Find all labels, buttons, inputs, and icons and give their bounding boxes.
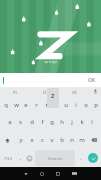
staticText: z <box>51 91 55 101</box>
staticText: h <box>60 118 64 126</box>
button[interactable]: Voice input <box>89 87 101 96</box>
staticText: l <box>91 118 93 126</box>
staticText: k <box>80 118 84 126</box>
staticText: w <box>14 101 19 109</box>
staticText: u <box>64 101 68 109</box>
staticText: y <box>54 101 58 109</box>
button[interactable]: , <box>16 149 25 167</box>
staticText: j <box>71 118 73 126</box>
button[interactable]: Hide keyboard <box>66 167 82 180</box>
button[interactable]: c <box>37 132 47 148</box>
button[interactable]: n <box>67 132 77 148</box>
staticText: s <box>19 118 22 126</box>
staticText: ?123 <box>4 156 12 161</box>
staticText: i <box>75 101 77 109</box>
staticText: r <box>35 101 38 109</box>
button[interactable]: f <box>37 114 47 130</box>
button[interactable]: ?123 <box>0 149 16 167</box>
staticText: Deutsch <box>48 156 63 161</box>
button[interactable]: Deutsch <box>35 150 75 166</box>
staticText: d <box>43 89 46 95</box>
button[interactable]: Shift <box>0 131 15 149</box>
staticText: ist <box>72 89 77 95</box>
staticText: c <box>41 136 44 144</box>
button[interactable]: ist <box>59 87 89 96</box>
button[interactable]: l <box>87 114 97 130</box>
button[interactable]: g <box>47 114 57 130</box>
button[interactable]: y <box>15 132 26 148</box>
staticText: , <box>20 155 22 162</box>
button[interactable]: u <box>61 97 71 112</box>
staticText: t <box>45 101 48 109</box>
button[interactable]: b <box>57 132 67 148</box>
staticText: x <box>30 136 34 144</box>
button[interactable]: OK <box>86 76 98 85</box>
button[interactable]: a <box>4 114 15 130</box>
button[interactable]: e <box>21 97 31 112</box>
staticText: f <box>41 118 44 126</box>
button[interactable]: m <box>77 132 87 148</box>
staticText: . <box>80 155 82 162</box>
button[interactable]: Emoji <box>25 149 34 167</box>
button[interactable]: d <box>29 87 59 96</box>
staticText: m <box>79 136 85 144</box>
staticText: g <box>50 118 54 126</box>
button[interactable]: Recents <box>50 167 66 180</box>
staticText: OK <box>88 77 96 84</box>
button[interactable]: r <box>31 97 41 112</box>
button[interactable]: p <box>91 97 101 112</box>
button[interactable]: k <box>77 114 87 130</box>
button[interactable]: Backspace <box>87 131 101 149</box>
button[interactable]: q <box>0 97 11 112</box>
staticText: v <box>50 136 54 144</box>
button[interactable]: . <box>76 149 85 167</box>
button[interactable]: i <box>71 97 81 112</box>
button[interactable]: Back <box>18 167 34 180</box>
button[interactable]: d <box>26 114 37 130</box>
staticText: tap to type <box>44 60 58 64</box>
button[interactable]: in <box>0 87 29 96</box>
button[interactable]: j <box>67 114 77 130</box>
button[interactable]: o <box>81 97 91 112</box>
staticText: p <box>94 101 98 109</box>
button[interactable]: s <box>15 114 26 130</box>
button[interactable]: Home <box>34 167 50 180</box>
staticText: e <box>24 101 28 109</box>
button[interactable]: w <box>11 97 21 112</box>
staticText: b <box>60 136 64 144</box>
staticText: q <box>4 101 8 109</box>
staticText: in <box>13 89 17 95</box>
staticText: a <box>8 118 12 126</box>
staticText: n <box>70 136 74 144</box>
staticText: o <box>84 101 88 109</box>
staticText: y <box>19 136 23 144</box>
button[interactable]: h <box>57 114 67 130</box>
button[interactable]: x <box>26 132 37 148</box>
button[interactable]: y <box>51 97 61 112</box>
staticText: d <box>30 118 34 126</box>
button[interactable]: v <box>47 132 57 148</box>
button[interactable]: Enter <box>88 153 98 163</box>
button[interactable]: t <box>41 97 51 112</box>
